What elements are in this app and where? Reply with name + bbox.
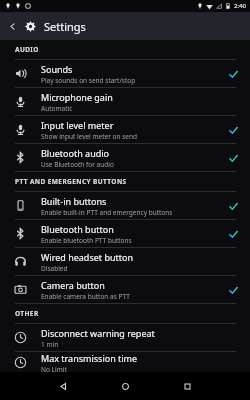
staticText: Enable built-in PTT and emergency button… [41, 208, 173, 217]
staticText: OTHER [15, 309, 39, 318]
button[interactable]: Recents [156, 372, 218, 400]
staticText: Settings [44, 19, 86, 34]
staticText: Microphone gain [41, 91, 113, 103]
staticText: Enable camera button as PTT [41, 292, 130, 301]
staticText: Disabled [41, 264, 68, 273]
button[interactable]: Sounds [0, 60, 250, 88]
staticText: Max transmission time [41, 352, 138, 364]
staticText: AUDIO [15, 45, 39, 54]
staticText: PTT AND EMERGENCY BUTTONS [15, 177, 127, 186]
button[interactable]: Wired headset button [0, 248, 250, 276]
button[interactable]: Toggle Sounds [224, 65, 242, 83]
staticText: No Limit [41, 365, 67, 372]
button[interactable]: Settings icon [21, 17, 39, 35]
button[interactable]: Built-in buttons [0, 192, 250, 220]
staticText: Bluetooth button [41, 223, 114, 235]
button[interactable]: Bluetooth button [0, 220, 250, 248]
button[interactable]: Input level meter [0, 116, 250, 144]
button[interactable]: Max transmission time [0, 352, 250, 372]
staticText: Bluetooth audio [41, 147, 110, 159]
button[interactable]: Back [4, 18, 20, 34]
staticText: Show input level meter on send [41, 132, 138, 141]
button[interactable]: Toggle Bluetooth button [224, 225, 242, 243]
staticText: Wired headset button [41, 251, 133, 263]
staticText: 1 min [41, 340, 59, 349]
staticText: Enable bluetooth PTT buttons [41, 236, 132, 245]
button[interactable]: Home [94, 372, 156, 400]
button[interactable]: Toggle Input level meter [224, 121, 242, 139]
staticText: Automatic [41, 104, 73, 113]
button[interactable]: Toggle Built-in buttons [224, 197, 242, 215]
staticText: 2:40 [234, 2, 246, 10]
staticText: Input level meter [41, 119, 114, 131]
staticText: Built-in buttons [41, 195, 107, 207]
button[interactable]: Toggle Bluetooth audio [224, 149, 242, 167]
staticText: Use Bluetooth for audio [41, 160, 114, 169]
button[interactable]: Disconnect warning repeat [0, 324, 250, 352]
button[interactable]: Toggle Camera button [224, 281, 242, 299]
button[interactable]: Bluetooth audio [0, 144, 250, 172]
button[interactable]: Back [32, 372, 94, 400]
staticText: Camera button [41, 279, 105, 291]
staticText: Sounds [41, 63, 73, 75]
button[interactable]: Camera button [0, 276, 250, 304]
button[interactable]: Microphone gain [0, 88, 250, 116]
staticText: Play sounds on send start/stop [41, 76, 136, 85]
staticText: Disconnect warning repeat [41, 327, 155, 339]
